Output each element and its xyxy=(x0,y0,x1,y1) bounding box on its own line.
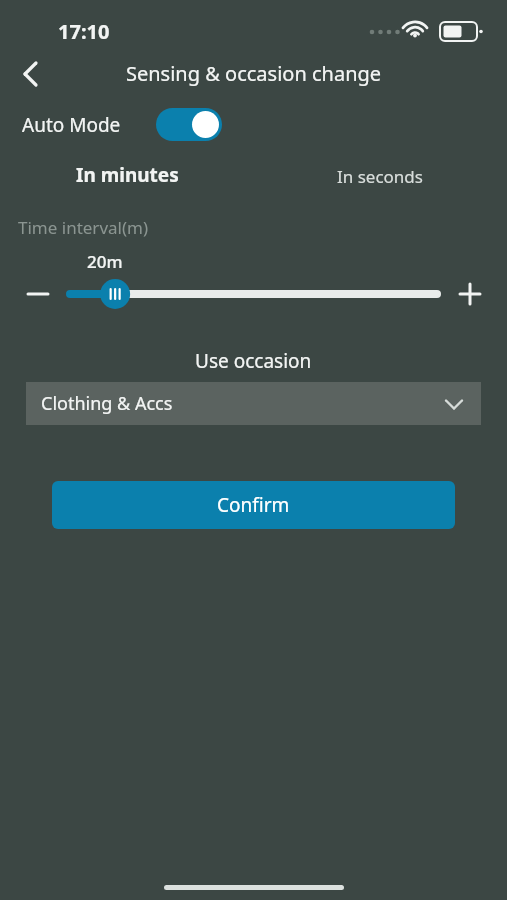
staticText: Auto Mode xyxy=(22,112,121,138)
staticText: 17:10 xyxy=(58,18,110,45)
button[interactable]: Increase interval xyxy=(450,274,490,314)
button[interactable]: In seconds xyxy=(305,160,455,192)
staticText: In seconds xyxy=(337,165,423,188)
button[interactable]: Clothing & Accs xyxy=(26,382,481,425)
staticText: Time interval(m) xyxy=(18,216,149,239)
button[interactable]: Time interval slider xyxy=(60,276,450,312)
button[interactable]: Decrease interval xyxy=(18,274,58,314)
staticText: 20m xyxy=(87,250,123,273)
staticText: In minutes xyxy=(76,162,179,188)
staticText: Confirm xyxy=(217,492,290,518)
staticText: Sensing & occasion change xyxy=(126,60,382,87)
staticText: Clothing & Accs xyxy=(41,391,173,416)
button[interactable]: In minutes xyxy=(50,158,205,192)
button[interactable]: Confirm xyxy=(52,481,455,529)
button[interactable]: Back xyxy=(8,52,52,96)
staticText: Use occasion xyxy=(195,348,312,374)
button[interactable]: Auto Mode toggle, on xyxy=(156,108,222,141)
